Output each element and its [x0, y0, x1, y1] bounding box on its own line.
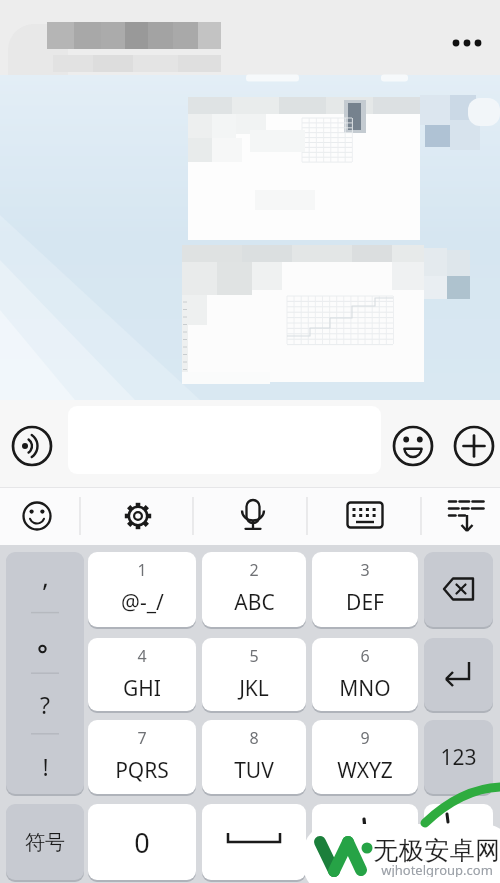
staticText: 符号: [25, 830, 65, 855]
button[interactable]: [424, 804, 493, 880]
button[interactable]: [5, 492, 95, 542]
staticText: JKL: [239, 674, 269, 703]
button[interactable]: [202, 804, 306, 880]
button[interactable]: [6, 552, 84, 794]
button[interactable]: [312, 638, 418, 711]
button[interactable]: [88, 638, 196, 711]
staticText: MNO: [339, 674, 391, 703]
button[interactable]: [440, 28, 492, 58]
button[interactable]: [88, 720, 196, 794]
staticText: 2: [249, 559, 259, 581]
button[interactable]: [88, 804, 196, 880]
button[interactable]: [424, 720, 493, 794]
button[interactable]: [6, 804, 84, 880]
staticText: DEF: [346, 588, 384, 617]
staticText: 6: [360, 645, 370, 667]
staticText: 3: [360, 559, 370, 581]
button[interactable]: [104, 492, 194, 542]
staticText: wjhotelgroup.com: [381, 861, 493, 877]
staticText: !: [42, 751, 49, 782]
staticText: 4: [137, 645, 147, 667]
staticText: 123: [440, 743, 477, 772]
staticText: 8: [249, 727, 259, 749]
button[interactable]: [88, 552, 196, 627]
staticText: WXYZ: [337, 756, 393, 785]
button[interactable]: [393, 426, 433, 466]
button[interactable]: [312, 804, 418, 880]
staticText: PQRS: [115, 756, 169, 785]
staticText: 9: [360, 727, 370, 749]
button[interactable]: [302, 492, 392, 542]
button[interactable]: [12, 426, 52, 466]
staticText: 无极安卓网: [373, 835, 500, 863]
button[interactable]: [312, 720, 418, 794]
button[interactable]: [202, 638, 306, 711]
button[interactable]: [202, 552, 306, 627]
staticText: ABC: [234, 588, 275, 617]
button[interactable]: [202, 720, 306, 794]
staticText: 7: [137, 727, 147, 749]
button[interactable]: [401, 492, 491, 542]
staticText: 0: [134, 824, 150, 861]
staticText: ?: [40, 689, 50, 720]
staticText: ,: [42, 559, 49, 594]
staticText: 5: [249, 645, 259, 667]
button[interactable]: [454, 426, 494, 466]
staticText: TUV: [234, 756, 274, 785]
staticText: @-_/: [121, 588, 164, 617]
staticText: GHI: [123, 674, 161, 703]
button[interactable]: [312, 552, 418, 627]
button[interactable]: [424, 552, 493, 627]
button[interactable]: [203, 492, 293, 542]
staticText: 1: [137, 559, 147, 581]
button[interactable]: [424, 638, 493, 711]
